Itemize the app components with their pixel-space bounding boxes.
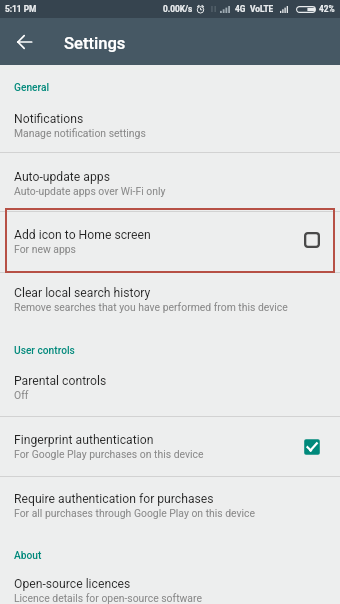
staticText: Settings (64, 34, 126, 53)
button[interactable]: Require authentication for purchases (0, 477, 340, 533)
staticText: Auto-update apps (14, 170, 110, 184)
staticText: Manage notification settings (14, 127, 146, 139)
staticText: General (14, 82, 50, 94)
staticText: For Google Play purchases on this device (14, 448, 204, 460)
staticText: Parental controls (14, 374, 107, 388)
button[interactable]: Auto-update apps (0, 153, 340, 211)
staticText: Licence details for open-source software (14, 592, 202, 604)
button[interactable]: Fingerprint authentication (0, 417, 340, 476)
staticText: 4G (235, 4, 246, 14)
button[interactable]: Clear local search history (0, 273, 340, 329)
staticText: Fingerprint authentication (14, 433, 154, 447)
staticText: Off (14, 389, 29, 401)
staticText: Remove searches that you have performed … (14, 301, 288, 313)
button[interactable]: Parental controls (0, 359, 340, 416)
staticText: Require authentication for purchases (14, 492, 214, 506)
staticText: VoLTE (250, 4, 274, 14)
staticText: 5:11 PM (5, 4, 37, 14)
staticText: Auto-update apps over Wi-Fi only (14, 185, 166, 197)
button[interactable]: Add icon to Home screen (0, 212, 340, 272)
button[interactable]: Notifications (0, 92, 340, 152)
staticText: 42% (319, 4, 335, 14)
staticText: User controls (14, 345, 75, 357)
staticText: Open-source licences (14, 577, 131, 591)
staticText: Notifications (14, 112, 84, 126)
staticText: Add icon to Home screen (14, 228, 151, 242)
staticText: For new apps (14, 243, 76, 255)
staticText: About (14, 550, 42, 562)
staticText: For all purchases through Google Play on… (14, 507, 256, 519)
staticText: Clear local search history (14, 286, 151, 300)
button[interactable]: Open-source licences (0, 562, 340, 604)
staticText: 0.00K/s (163, 4, 193, 14)
button[interactable]: Back (0, 18, 48, 65)
